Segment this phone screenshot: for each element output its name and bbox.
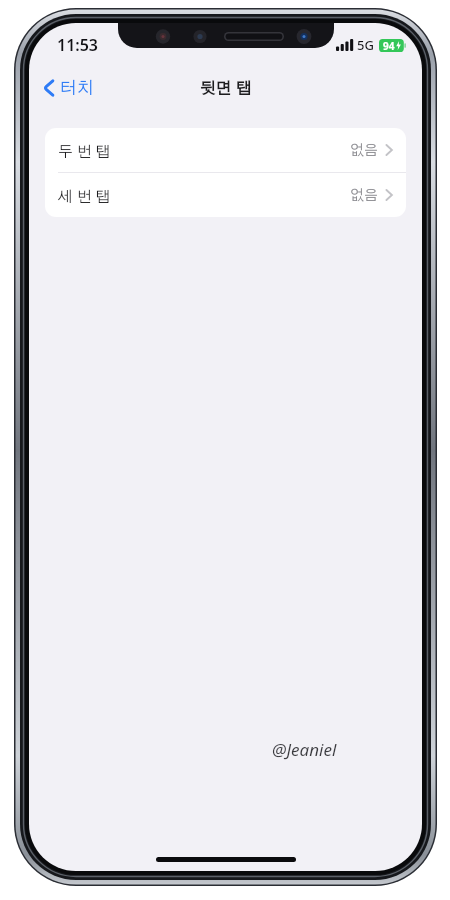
button[interactable]: 세 번 탭 <box>45 173 406 217</box>
staticText: 터치 <box>60 77 94 98</box>
staticText: @Jeaniel <box>272 738 337 761</box>
other: Home indicator <box>156 857 296 862</box>
staticText: 94 <box>383 39 395 52</box>
staticText: 5G <box>357 36 374 54</box>
staticText: 11:53 <box>57 34 99 56</box>
button[interactable]: 터치 <box>38 73 99 102</box>
staticText: 두 번 탭 <box>58 140 111 160</box>
button[interactable]: 두 번 탭 <box>45 128 406 173</box>
staticText: 뒷면 탭 <box>199 76 252 98</box>
staticText: 없음 <box>350 186 378 204</box>
staticText: 세 번 탭 <box>58 185 111 205</box>
staticText: 없음 <box>350 141 378 159</box>
